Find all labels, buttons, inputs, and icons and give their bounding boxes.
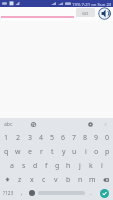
staticText: 1: [4, 133, 9, 143]
staticText: .: [90, 189, 92, 197]
button[interactable]: c: [38, 173, 50, 186]
button[interactable]: Shift: [0, 173, 14, 186]
button[interactable]: d: [30, 159, 41, 173]
staticText: o: [94, 147, 99, 157]
button[interactable]: Settings: [84, 118, 96, 131]
staticText: g: [55, 161, 60, 171]
button[interactable]: y: [58, 145, 69, 159]
button[interactable]: ,: [17, 186, 27, 200]
staticText: 19% 7:21 on Sun 23: [72, 1, 112, 7]
button[interactable]: Clipboard: [27, 118, 40, 131]
staticText: u: [72, 147, 77, 157]
button[interactable]: k: [85, 159, 96, 173]
button[interactable]: Enter: [96, 186, 113, 200]
button[interactable]: r: [36, 145, 47, 159]
button[interactable]: g: [52, 159, 63, 173]
staticText: ?123: [3, 190, 14, 197]
staticText: c: [42, 175, 46, 185]
button[interactable]: 2: [12, 131, 24, 145]
button[interactable]: u: [69, 145, 80, 159]
button[interactable]: 0: [102, 131, 113, 145]
button[interactable]: z: [14, 173, 26, 186]
staticText: ,: [21, 189, 23, 197]
button[interactable]: ?123: [0, 186, 17, 200]
staticText: r: [40, 147, 43, 157]
button[interactable]: Backspace: [98, 173, 113, 186]
button[interactable]: 7: [69, 131, 80, 145]
button[interactable]: Text input: [1, 7, 74, 21]
button[interactable]: 5: [47, 131, 58, 145]
button[interactable]: b: [62, 173, 74, 186]
button[interactable]: 1: [0, 131, 12, 145]
staticText: j: [79, 161, 81, 171]
staticText: e: [28, 147, 32, 157]
button[interactable]: Speak: [98, 7, 111, 20]
button[interactable]: x: [26, 173, 38, 186]
staticText: d: [33, 161, 38, 171]
button[interactable]: 6: [58, 131, 69, 145]
staticText: k: [89, 161, 93, 171]
staticText: 3: [28, 133, 33, 143]
staticText: 7: [72, 133, 77, 143]
button[interactable]: s: [18, 159, 30, 173]
button[interactable]: t: [47, 145, 58, 159]
button[interactable]: j: [74, 159, 85, 173]
staticText: y: [62, 147, 66, 157]
button[interactable]: Emoji: [27, 186, 37, 200]
staticText: z: [18, 175, 22, 185]
staticText: 4: [39, 133, 44, 143]
staticText: t: [51, 147, 54, 157]
staticText: 2: [16, 133, 21, 143]
staticText: h: [66, 161, 71, 171]
button[interactable]: 8: [80, 131, 91, 145]
button[interactable]: f: [41, 159, 52, 173]
staticText: p: [105, 147, 110, 157]
button[interactable]: .: [86, 186, 96, 200]
button[interactable]: n: [74, 173, 86, 186]
staticText: w: [15, 147, 21, 157]
staticText: m: [89, 175, 96, 185]
staticText: q: [4, 147, 9, 157]
staticText: 0: [105, 133, 110, 143]
button[interactable]: Collapse: [99, 118, 111, 131]
button[interactable]: m: [86, 173, 98, 186]
button[interactable]: a: [6, 159, 18, 173]
button[interactable]: l: [96, 159, 107, 173]
staticText: n: [78, 175, 83, 185]
button[interactable]: 9: [91, 131, 102, 145]
staticText: x: [30, 175, 34, 185]
button[interactable]: 3: [24, 131, 36, 145]
button[interactable]: 4: [36, 131, 47, 145]
staticText: 5: [50, 133, 55, 143]
button[interactable]: GO: [76, 8, 95, 17]
staticText: 8: [83, 133, 88, 143]
button[interactable]: p: [102, 145, 113, 159]
staticText: a: [10, 161, 14, 171]
staticText: v: [54, 175, 58, 185]
staticText: 6: [61, 133, 66, 143]
button[interactable]: w: [12, 145, 24, 159]
staticText: GO: [82, 10, 89, 16]
button[interactable]: h: [63, 159, 74, 173]
staticText: b: [66, 175, 71, 185]
staticText: 9: [94, 133, 99, 143]
staticText: abc: [4, 121, 13, 128]
button[interactable]: abc: [1, 118, 15, 131]
staticText: l: [101, 161, 103, 171]
staticText: s: [22, 161, 26, 171]
button[interactable]: q: [0, 145, 12, 159]
button[interactable]: e: [24, 145, 36, 159]
button[interactable]: v: [50, 173, 62, 186]
button[interactable]: o: [91, 145, 102, 159]
button[interactable]: i: [80, 145, 91, 159]
staticText: f: [45, 161, 48, 171]
staticText: i: [85, 147, 87, 157]
